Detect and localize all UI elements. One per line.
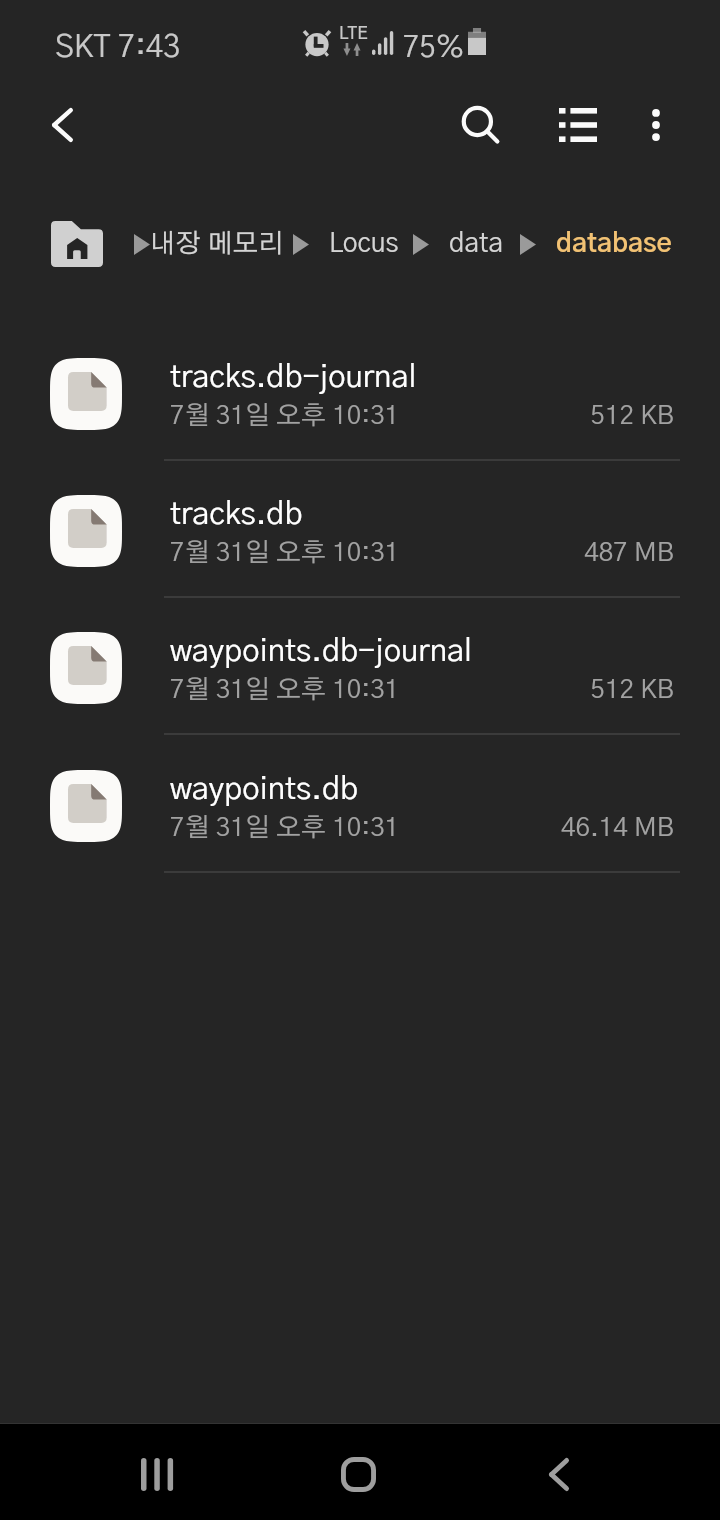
button[interactable]: tracks.db [0,461,720,598]
button[interactable]: Locus [284,231,399,258]
button[interactable]: 내장 메모리 [103,231,284,258]
staticText: LTE [339,25,369,42]
staticText: 7월 31일 오후 10:31 [170,540,400,566]
staticText: Locus [329,231,399,258]
button[interactable]: View as list [538,85,618,165]
staticText: data [449,231,504,258]
staticText: 7월 31일 오후 10:31 [170,403,400,429]
button[interactable]: Back [509,1424,609,1520]
staticText: SKT 7:43 [55,32,181,63]
staticText: waypoints.db [170,774,358,805]
button[interactable]: Home folder [51,221,103,267]
staticText: 7월 31일 오후 10:31 [170,677,400,703]
staticText: 46.14 MB [0,815,674,841]
button[interactable]: More options [616,85,696,165]
button[interactable]: Search [440,85,520,165]
button[interactable]: waypoints.db [0,736,720,873]
staticText: tracks.db [170,499,303,530]
staticText: tracks.db-journal [170,362,417,393]
staticText: 487 MB [0,540,674,566]
button[interactable]: data [399,231,504,258]
button[interactable]: waypoints.db-journal [0,598,720,735]
staticText: 512 KB [0,677,674,703]
staticText: 내장 메모리 [150,231,284,258]
button[interactable]: Home [308,1424,408,1520]
staticText: 7월 31일 오후 10:31 [170,815,400,841]
button[interactable]: tracks.db-journal [0,324,720,461]
button[interactable]: Back [22,85,102,165]
staticText: waypoints.db-journal [170,636,472,667]
staticText: database [556,231,672,258]
button[interactable]: database [504,231,672,258]
button[interactable]: Recent apps [106,1424,206,1520]
staticText: 75% [403,33,465,63]
staticText: 512 KB [0,403,674,429]
